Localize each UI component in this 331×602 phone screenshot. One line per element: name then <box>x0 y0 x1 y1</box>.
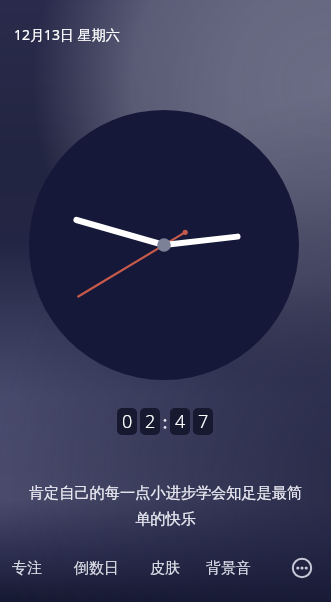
staticText: 7 <box>198 409 209 434</box>
staticText: 皮肤 <box>150 559 180 578</box>
staticText: 12月13日 星期六 <box>14 25 120 44</box>
staticText: 肯定自己的每一点小进步学会知足是最简单的快乐 <box>24 483 307 529</box>
button[interactable]: 背景音 <box>206 556 251 581</box>
staticText: 2 <box>145 409 156 434</box>
staticText: 0 <box>122 409 133 434</box>
button[interactable]: 皮肤 <box>150 556 180 581</box>
staticText: 专注 <box>12 559 42 578</box>
button[interactable]: 倒数日 <box>74 556 119 581</box>
button[interactable]: More options <box>290 556 314 580</box>
staticText: 倒数日 <box>74 559 119 578</box>
staticText: 背景音 <box>206 559 251 578</box>
staticText: 4 <box>175 409 186 434</box>
button[interactable]: 专注 <box>12 556 42 581</box>
